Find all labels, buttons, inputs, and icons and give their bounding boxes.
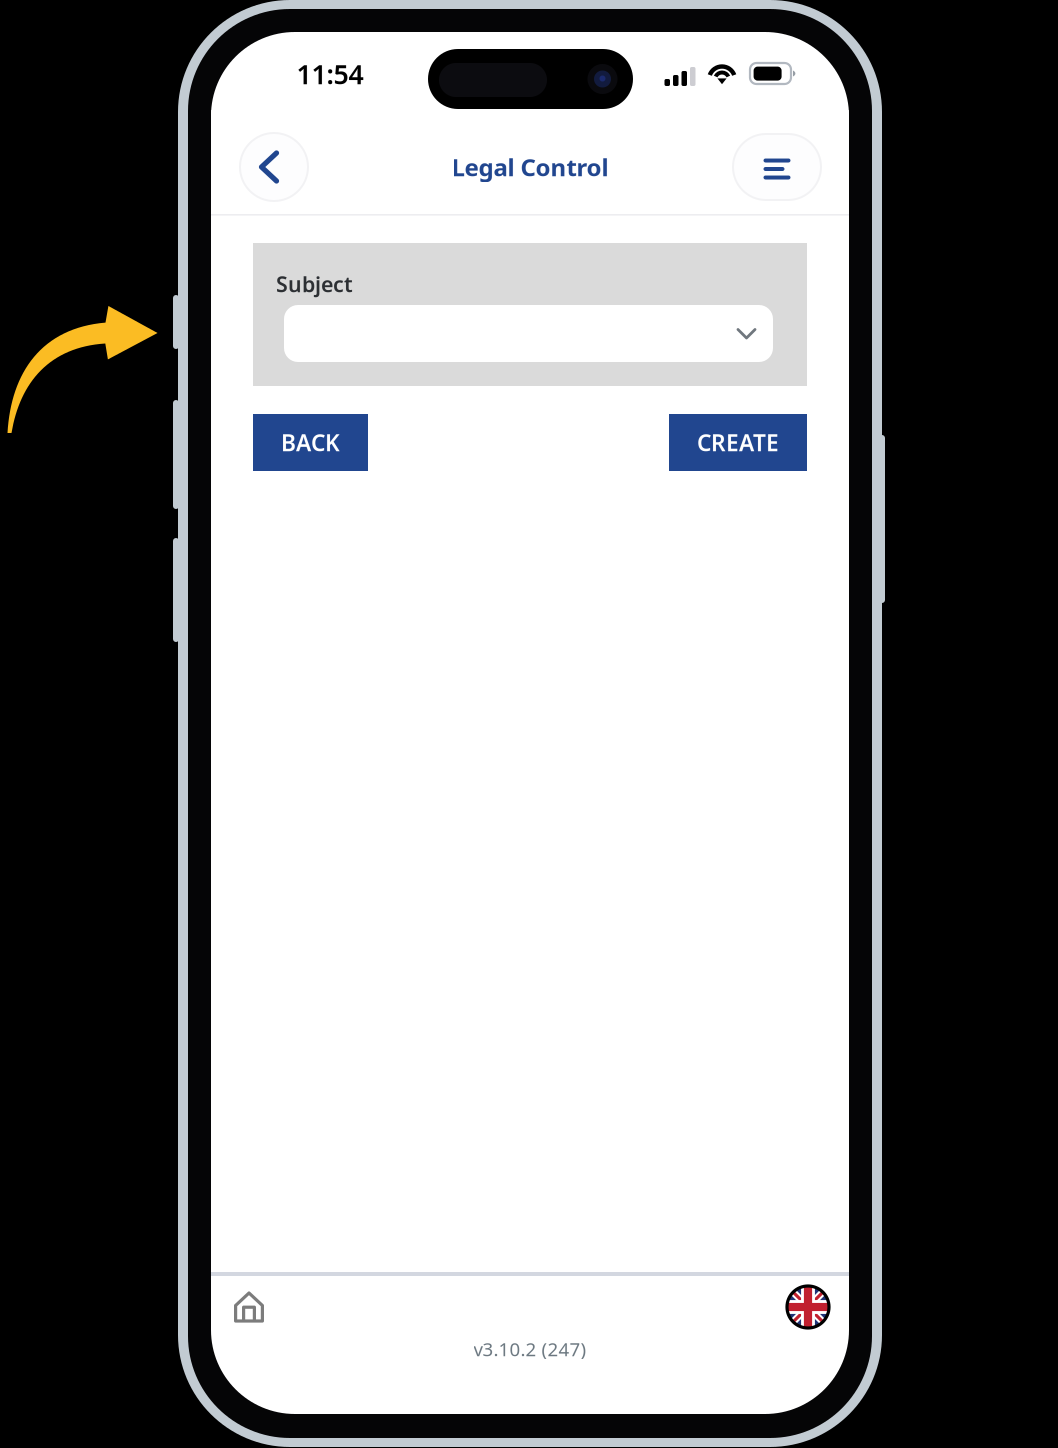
staticText: 11:54 <box>296 56 363 92</box>
button[interactable]: Home <box>216 1274 282 1340</box>
staticText: v3.10.2 (247) <box>473 1337 586 1361</box>
button[interactable]: Back <box>239 132 309 202</box>
staticText: CREATE <box>697 427 779 457</box>
staticText: Subject <box>276 270 353 298</box>
button[interactable]: Subject <box>284 305 773 362</box>
staticText: BACK <box>281 427 340 457</box>
button[interactable]: Menu <box>732 133 822 201</box>
button[interactable]: BACK <box>253 414 368 471</box>
button[interactable]: Language <box>778 1277 838 1337</box>
button[interactable]: CREATE <box>669 414 807 471</box>
staticText: Legal Control <box>451 151 608 183</box>
